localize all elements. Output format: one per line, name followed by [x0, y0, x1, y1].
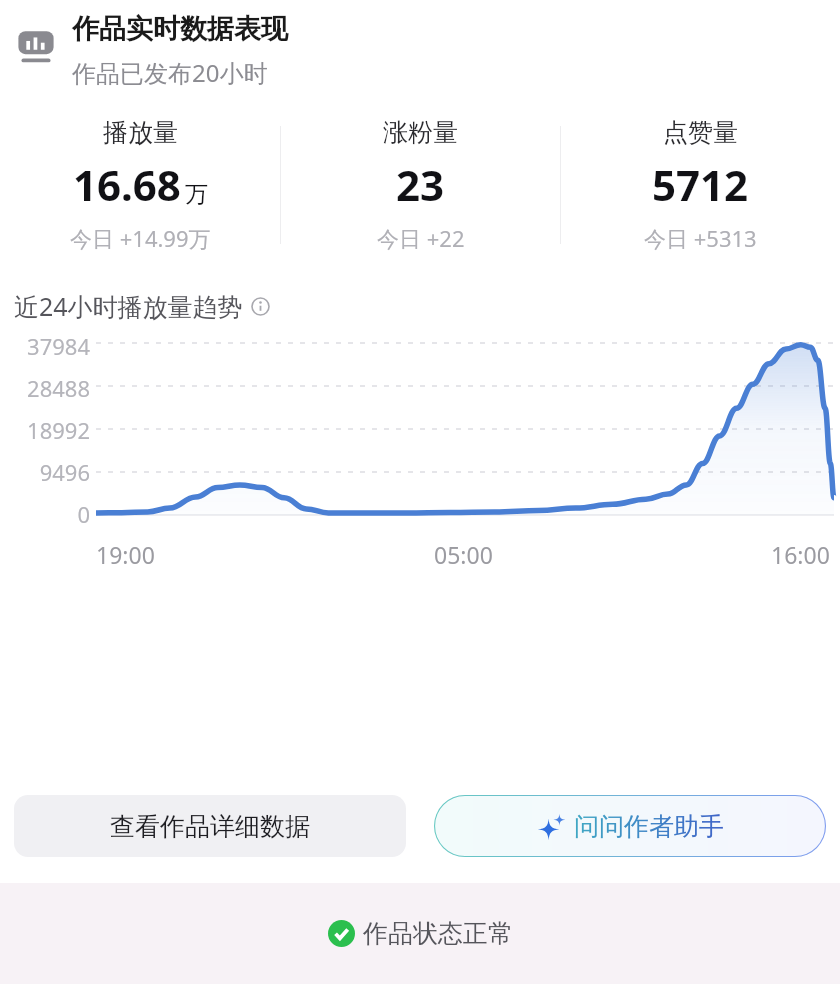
staticText: 0 — [77, 499, 90, 529]
button[interactable]: 问问作者助手 — [434, 795, 826, 857]
staticText: 16.68 — [73, 156, 181, 213]
staticText: 05:00 — [434, 539, 493, 570]
button[interactable]: 播放量 — [0, 115, 280, 255]
staticText: 作品已发布20小时 — [72, 56, 268, 89]
staticText: 作品状态正常 — [363, 918, 513, 949]
staticText: 16:00 — [771, 539, 830, 570]
staticText: 18992 — [27, 415, 90, 445]
staticText: 万 — [185, 180, 208, 209]
button[interactable]: 近24小时播放量趋势 — [14, 289, 270, 323]
staticText: 37984 — [27, 331, 90, 361]
staticText: 点赞量 — [663, 117, 738, 148]
staticText: 今日 +22 — [377, 223, 465, 253]
staticText: 23 — [396, 156, 445, 213]
staticText: 作品实时数据表现 — [72, 12, 288, 46]
staticText: 播放量 — [103, 117, 178, 148]
button[interactable]: 涨粉量 — [281, 115, 560, 255]
staticText: 9496 — [39, 457, 90, 487]
button[interactable]: 点赞量 — [561, 115, 840, 255]
staticText: 今日 +5313 — [644, 223, 757, 253]
staticText: 28488 — [27, 373, 90, 403]
staticText: 19:00 — [96, 539, 155, 570]
button[interactable]: 作品状态正常 — [328, 918, 513, 949]
other: 说明 — [251, 297, 270, 316]
staticText: 5712 — [652, 156, 749, 213]
button[interactable]: 查看作品详细数据 — [14, 795, 406, 857]
staticText: 涨粉量 — [383, 117, 458, 148]
staticText: 近24小时播放量趋势 — [14, 289, 243, 323]
staticText: 今日 +14.99万 — [70, 223, 211, 253]
staticText: 查看作品详细数据 — [110, 811, 310, 842]
staticText: 问问作者助手 — [574, 811, 724, 842]
